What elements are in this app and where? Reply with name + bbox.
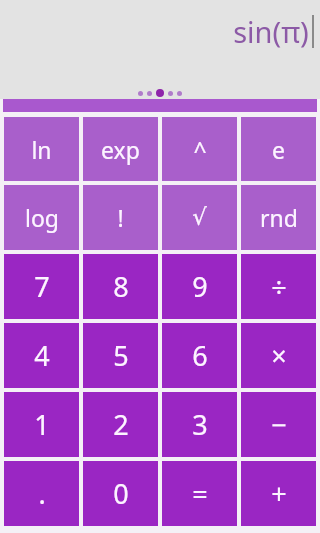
button[interactable]: × xyxy=(241,323,316,388)
button[interactable]: e xyxy=(241,117,316,181)
staticText: 1 xyxy=(34,406,50,443)
button[interactable]: 6 xyxy=(162,323,237,388)
staticText: √ xyxy=(192,204,207,231)
button[interactable]: 4 xyxy=(4,323,79,388)
staticText: = xyxy=(192,475,208,512)
staticText: ^ xyxy=(193,134,207,165)
staticText: 3 xyxy=(192,406,208,443)
staticText: 0 xyxy=(113,475,129,512)
staticText: 2 xyxy=(113,406,129,443)
staticText: − xyxy=(271,406,287,443)
staticText: × xyxy=(271,337,287,374)
staticText: 6 xyxy=(192,337,208,374)
button[interactable]: 7 xyxy=(4,254,79,319)
button[interactable]: + xyxy=(241,461,316,526)
button[interactable]: √ xyxy=(162,185,237,250)
staticText: rnd xyxy=(260,202,298,233)
button[interactable]: ln xyxy=(4,117,79,181)
button[interactable]: = xyxy=(162,461,237,526)
button[interactable]: 9 xyxy=(162,254,237,319)
staticText: + xyxy=(271,475,287,512)
button[interactable]: 1 xyxy=(4,392,79,457)
staticText: ln xyxy=(31,134,52,165)
staticText: . xyxy=(38,475,46,512)
staticText: 7 xyxy=(34,268,50,305)
staticText: 8 xyxy=(113,268,129,305)
staticText: sin(π) xyxy=(233,12,309,51)
button[interactable]: exp xyxy=(83,117,158,181)
button[interactable]: ! xyxy=(83,185,158,250)
button[interactable]: 3 xyxy=(162,392,237,457)
button[interactable]: log xyxy=(4,185,79,250)
staticText: log xyxy=(25,202,59,233)
button[interactable]: 8 xyxy=(83,254,158,319)
staticText: exp xyxy=(101,134,140,165)
button[interactable]: ^ xyxy=(162,117,237,181)
button[interactable]: . xyxy=(4,461,79,526)
staticText: e xyxy=(272,134,285,165)
button[interactable]: − xyxy=(241,392,316,457)
button[interactable]: ÷ xyxy=(241,254,316,319)
button[interactable]: 0 xyxy=(83,461,158,526)
button[interactable]: 5 xyxy=(83,323,158,388)
button[interactable]: rnd xyxy=(241,185,316,250)
staticText: ÷ xyxy=(271,268,287,305)
button[interactable]: 2 xyxy=(83,392,158,457)
staticText: 5 xyxy=(113,337,129,374)
staticText: ! xyxy=(117,202,124,233)
staticText: 9 xyxy=(192,268,208,305)
staticText: 4 xyxy=(34,337,50,374)
